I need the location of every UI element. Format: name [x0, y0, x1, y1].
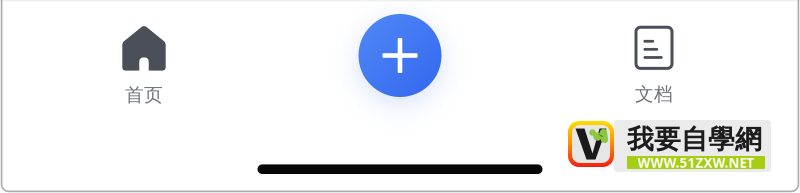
- staticText: 我要自學網: [627, 123, 762, 156]
- staticText: WWW.51ZXW.NET: [637, 154, 754, 171]
- button[interactable]: 首页: [84, 0, 204, 118]
- button[interactable]: New: [358, 14, 441, 97]
- staticText: 文档: [635, 83, 673, 106]
- button[interactable]: 文档: [594, 1, 714, 118]
- staticText: 首页: [125, 84, 163, 106]
